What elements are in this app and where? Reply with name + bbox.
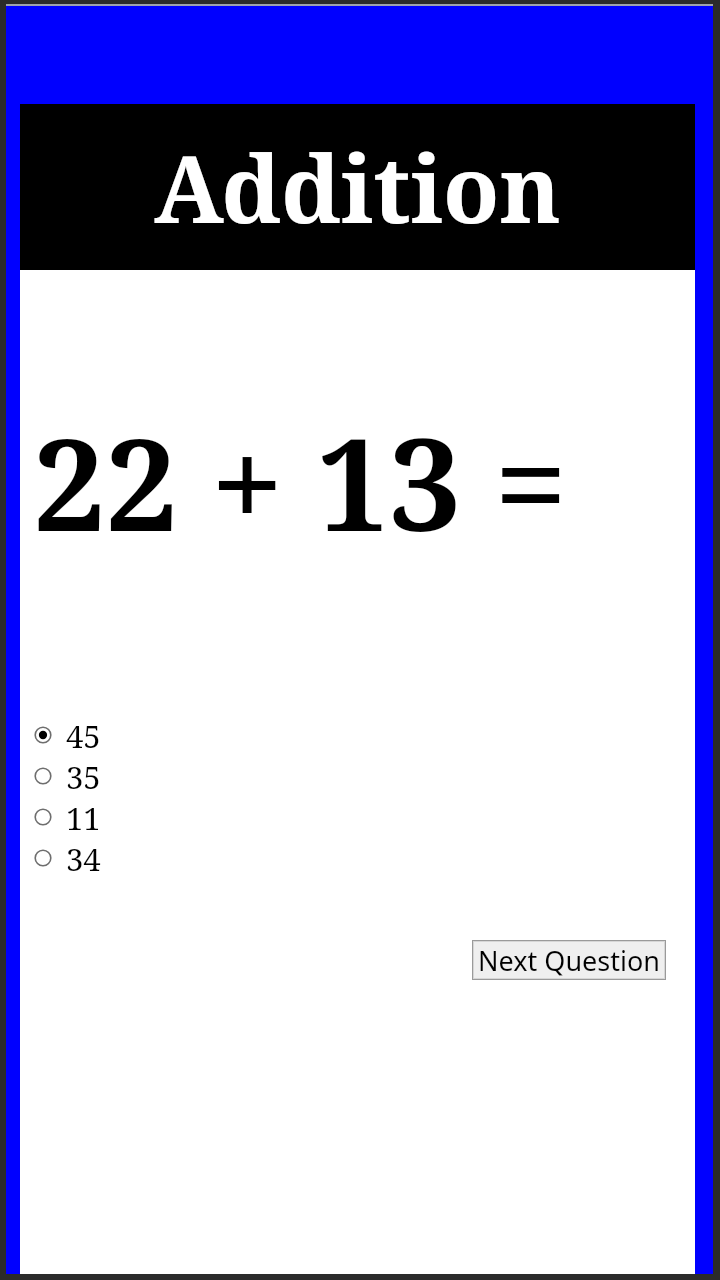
button[interactable]: 35 — [28, 757, 148, 795]
staticText: Next Question — [478, 942, 660, 978]
button[interactable]: Next Question — [474, 942, 664, 978]
staticText: 35 — [66, 756, 101, 794]
staticText: 34 — [66, 838, 101, 876]
button[interactable]: 11 — [28, 798, 148, 836]
button[interactable]: 34 — [28, 839, 148, 877]
staticText: 22 + 13 = — [33, 394, 567, 568]
staticText: 11 — [66, 797, 101, 835]
staticText: Addition — [154, 125, 561, 250]
button[interactable]: 45 — [28, 716, 148, 754]
staticText: 45 — [66, 715, 101, 753]
